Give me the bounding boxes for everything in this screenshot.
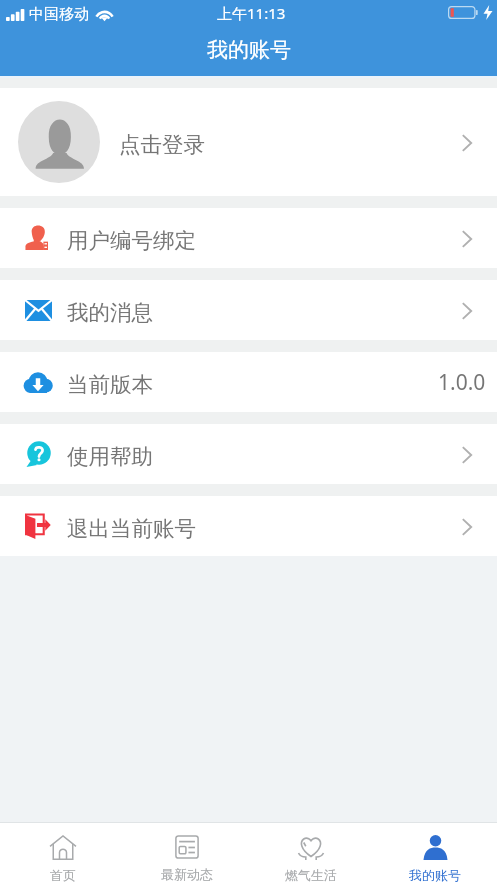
staticText: 使用帮助 xyxy=(67,443,153,470)
button[interactable]: 我的账号 xyxy=(373,823,497,883)
button[interactable]: 首页 xyxy=(0,823,125,883)
button[interactable]: 最新动态 xyxy=(125,823,249,883)
staticText: 最新动态 xyxy=(161,866,213,882)
staticText: 点击登录 xyxy=(119,131,205,158)
button[interactable]: 燃气生活 xyxy=(249,823,373,883)
button[interactable]: 点击登录 xyxy=(0,88,497,196)
button[interactable]: 用户编号绑定 xyxy=(0,208,497,268)
button[interactable]: 使用帮助 xyxy=(0,424,497,484)
staticText: 用户编号绑定 xyxy=(67,227,196,254)
button[interactable]: 退出当前账号 xyxy=(0,496,497,556)
staticText: 中国移动 xyxy=(29,5,89,24)
staticText: 我的账号 xyxy=(207,37,291,63)
staticText: 上午11:13 xyxy=(217,3,286,23)
staticText: 燃气生活 xyxy=(285,867,337,883)
staticText: 1.0.0 xyxy=(438,368,486,397)
staticText: 我的账号 xyxy=(409,867,461,883)
button[interactable]: 当前版本 xyxy=(0,352,497,412)
staticText: 当前版本 xyxy=(67,371,153,398)
staticText: 我的消息 xyxy=(67,299,153,326)
staticText: 退出当前账号 xyxy=(67,515,196,542)
button[interactable]: 我的消息 xyxy=(0,280,497,340)
staticText: 首页 xyxy=(50,867,76,883)
